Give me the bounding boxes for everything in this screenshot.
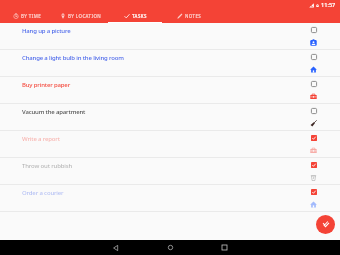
button[interactable]: Home [158,240,182,255]
staticText: Hang up a picture [22,27,71,35]
button[interactable]: Throw out rubbish [0,158,340,185]
button[interactable]: Mark not done [307,159,321,173]
button[interactable]: Mark done [307,24,321,38]
button[interactable]: Mark all tasks done [316,215,335,234]
staticText: 11:57 [321,1,336,9]
button[interactable]: Mark not done [307,186,321,200]
button[interactable]: Order a courier [0,185,340,212]
button[interactable]: Back [104,240,128,255]
button[interactable]: Change a light bulb in the living room [0,50,340,77]
staticText: TASKS [132,13,147,19]
button[interactable]: Write a report [0,131,340,158]
button[interactable]: Buy printer paper [0,77,340,104]
button[interactable]: Mark not done [307,132,321,146]
staticText: Write a report [22,135,60,143]
staticText: Change a light bulb in the living room [22,54,124,62]
button[interactable]: Mark done [307,51,321,65]
button[interactable]: Vacuum the apartment [0,104,340,131]
button[interactable]: Recent apps [212,240,236,255]
staticText: BY LOCATION [68,13,102,19]
staticText: BY TIME [21,13,42,19]
button[interactable]: Mark done [307,78,321,92]
button[interactable]: Mark done [307,105,321,119]
staticText: Vacuum the apartment [22,108,86,116]
button[interactable]: BY LOCATION [54,11,108,23]
button[interactable]: TASKS [108,11,162,23]
button[interactable]: NOTES [162,11,216,23]
button[interactable]: BY TIME [0,11,54,23]
staticText: Order a courier [22,189,64,197]
button[interactable]: Hang up a picture [0,23,340,50]
staticText: Throw out rubbish [22,162,73,170]
staticText: NOTES [185,13,202,19]
staticText: Buy printer paper [22,81,71,89]
